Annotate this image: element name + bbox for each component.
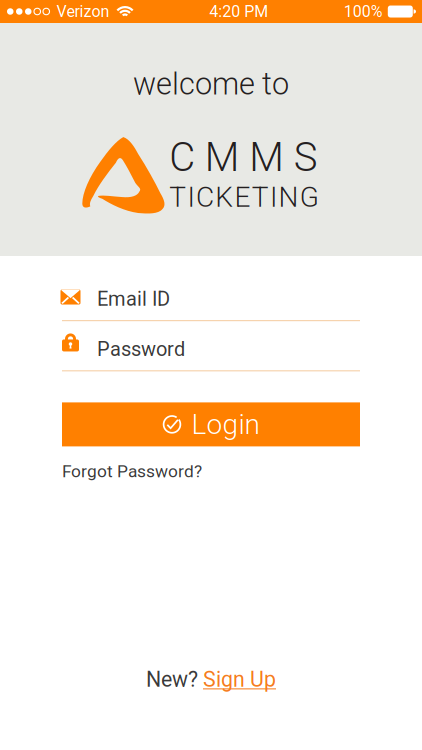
staticText: Email ID bbox=[97, 287, 170, 311]
staticText: Password bbox=[97, 337, 185, 361]
button[interactable]: New? bbox=[146, 667, 276, 692]
staticText: New? bbox=[146, 667, 198, 692]
staticText: TICKETING bbox=[169, 181, 319, 214]
staticText: Verizon bbox=[56, 2, 109, 21]
button[interactable]: Forgot Password? bbox=[62, 460, 360, 482]
staticText: CMMS bbox=[169, 134, 318, 181]
staticText: 100% bbox=[344, 2, 383, 21]
staticText: welcome to bbox=[133, 66, 289, 102]
staticText: 4:20 PM bbox=[209, 2, 268, 21]
staticText: Login bbox=[191, 408, 259, 441]
staticText: Forgot Password? bbox=[62, 461, 202, 481]
staticText: Sign Up bbox=[203, 667, 276, 692]
button[interactable]: Login bbox=[62, 402, 360, 446]
